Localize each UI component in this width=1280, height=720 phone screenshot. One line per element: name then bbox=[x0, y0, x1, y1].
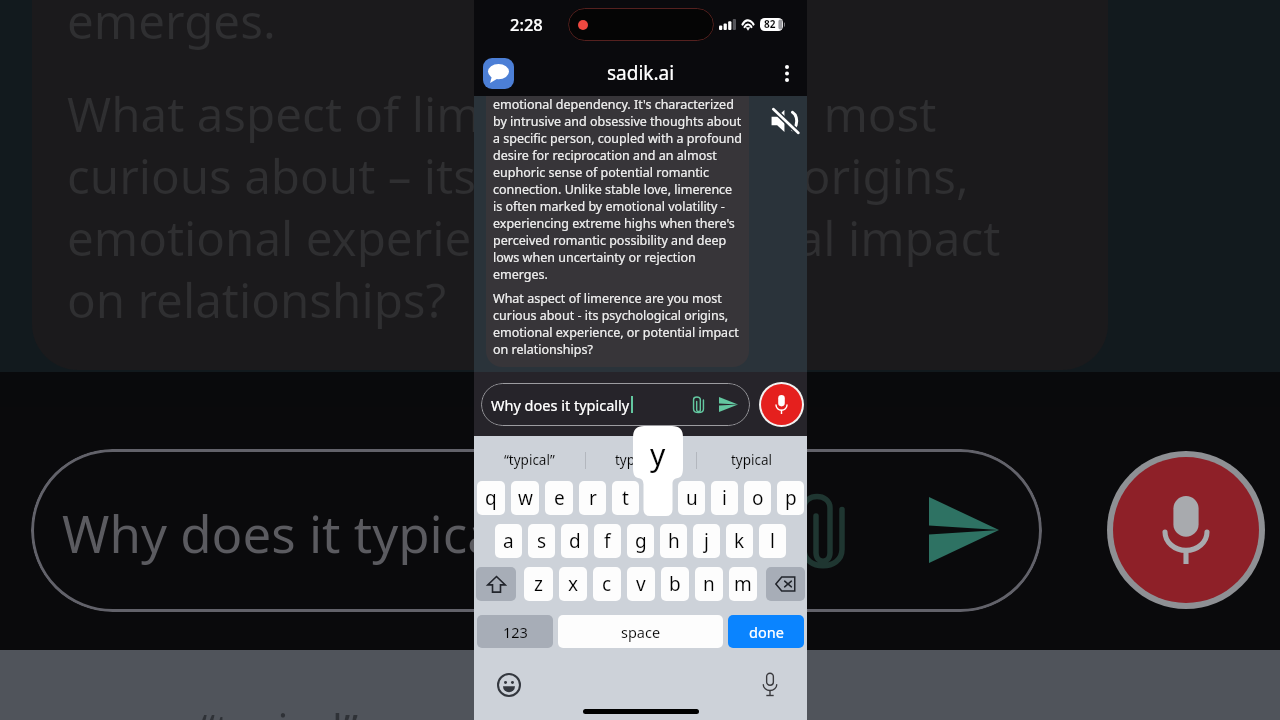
staticText: w bbox=[518, 485, 533, 511]
button[interactable]: n bbox=[695, 567, 723, 601]
button[interactable]: v bbox=[627, 567, 655, 601]
staticText: c bbox=[602, 571, 612, 597]
button[interactable]: m bbox=[729, 567, 757, 601]
staticText: Why does it typically bbox=[491, 395, 630, 415]
staticText: emotional experience, or potential impac… bbox=[67, 205, 1001, 270]
button[interactable]: More options bbox=[767, 53, 807, 93]
staticText: j bbox=[704, 528, 709, 554]
staticText: f bbox=[604, 528, 611, 554]
button[interactable]: h bbox=[660, 524, 687, 558]
button[interactable]: e bbox=[545, 481, 573, 515]
staticText: space bbox=[621, 622, 661, 642]
staticText: q bbox=[485, 485, 497, 511]
staticText: sadik.ai bbox=[607, 60, 675, 86]
staticText: curious about – its psychological origin… bbox=[67, 143, 969, 208]
button[interactable]: k bbox=[726, 524, 753, 558]
button[interactable]: Mute bbox=[768, 104, 802, 138]
staticText: i bbox=[722, 485, 727, 511]
staticText: 2:28 bbox=[510, 13, 543, 35]
staticText: t bbox=[622, 485, 629, 511]
staticText: g bbox=[635, 528, 647, 554]
button[interactable]: Dictation bbox=[762, 672, 778, 697]
button[interactable]: 123 bbox=[477, 615, 553, 648]
button[interactable]: o bbox=[744, 481, 771, 515]
button[interactable]: i bbox=[711, 481, 738, 515]
staticText: done bbox=[749, 622, 784, 642]
button[interactable]: s bbox=[528, 524, 555, 558]
button[interactable]: done bbox=[728, 615, 804, 648]
staticText: What aspect of limerence are you most bbox=[67, 81, 937, 146]
button[interactable]: typically bbox=[586, 439, 696, 481]
staticText: n bbox=[703, 571, 715, 597]
staticText: 82 bbox=[764, 17, 776, 31]
button[interactable]: z bbox=[524, 567, 553, 601]
button[interactable]: t bbox=[612, 481, 639, 515]
button[interactable]: q bbox=[477, 481, 505, 515]
staticText: typically bbox=[615, 451, 667, 469]
staticText: o bbox=[752, 485, 764, 511]
button[interactable]: Shift bbox=[476, 567, 516, 601]
staticText: x bbox=[568, 571, 579, 597]
staticText: “typical” bbox=[504, 451, 555, 469]
staticText: s bbox=[537, 528, 547, 554]
button[interactable]: d bbox=[561, 524, 588, 558]
button[interactable]: w bbox=[511, 481, 539, 515]
button[interactable]: Backspace bbox=[766, 567, 805, 601]
staticText: u bbox=[686, 485, 698, 511]
button[interactable]: space bbox=[558, 615, 723, 648]
button[interactable]: u bbox=[678, 481, 705, 515]
staticText: h bbox=[668, 528, 680, 554]
button[interactable]: r bbox=[579, 481, 606, 515]
button[interactable]: a bbox=[495, 524, 522, 558]
staticText: y bbox=[650, 434, 666, 475]
button[interactable]: Emoji bbox=[497, 673, 521, 697]
button[interactable]: j bbox=[693, 524, 720, 558]
staticText: What aspect of limerence are you most cu… bbox=[493, 290, 742, 358]
button[interactable]: Why does it typically bbox=[481, 383, 750, 426]
staticText: z bbox=[534, 571, 543, 597]
button[interactable]: b bbox=[661, 567, 689, 601]
staticText: 123 bbox=[503, 622, 528, 642]
staticText: emerges. bbox=[67, 0, 276, 53]
button[interactable]: f bbox=[594, 524, 621, 558]
staticText: Why does it typically bbox=[62, 498, 549, 567]
staticText: d bbox=[569, 528, 581, 554]
staticText: a bbox=[503, 528, 514, 554]
staticText: “typical” bbox=[200, 700, 358, 720]
button[interactable]: x bbox=[559, 567, 587, 601]
button[interactable]: “typical” bbox=[474, 439, 585, 481]
staticText: l bbox=[770, 528, 775, 554]
button[interactable]: c bbox=[593, 567, 621, 601]
staticText: p bbox=[785, 485, 797, 511]
button[interactable]: p bbox=[777, 481, 804, 515]
button[interactable]: Record voice bbox=[761, 384, 802, 425]
staticText: v bbox=[636, 571, 646, 597]
staticText: r bbox=[589, 485, 597, 511]
staticText: b bbox=[669, 571, 681, 597]
button[interactable]: l bbox=[759, 524, 786, 558]
staticText: e bbox=[554, 485, 565, 511]
staticText: emotional dependency. It's characterized… bbox=[493, 96, 742, 283]
staticText: m bbox=[734, 571, 752, 597]
staticText: typical bbox=[731, 451, 773, 469]
button[interactable]: Messages bbox=[483, 58, 514, 89]
staticText: on relationships? bbox=[67, 267, 447, 332]
button[interactable]: typical bbox=[697, 439, 807, 481]
staticText: k bbox=[734, 528, 745, 554]
button[interactable]: g bbox=[627, 524, 654, 558]
